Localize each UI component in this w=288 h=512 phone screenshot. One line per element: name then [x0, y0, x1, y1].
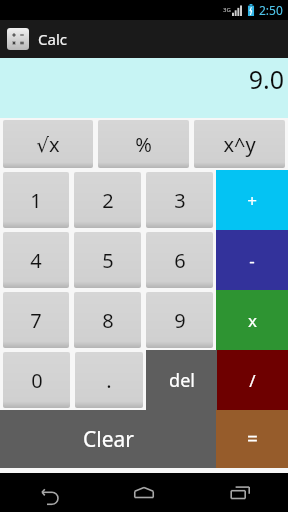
button[interactable]: Equals	[216, 410, 288, 468]
button[interactable]: Clear	[0, 410, 216, 468]
staticText: Clear	[83, 425, 134, 454]
button[interactable]: 0	[3, 352, 70, 408]
staticText: del	[169, 368, 195, 393]
button[interactable]: %	[98, 120, 189, 168]
staticText: x	[248, 309, 257, 332]
button[interactable]: 9	[146, 292, 213, 348]
button[interactable]: 7	[3, 292, 69, 348]
button[interactable]: Minus	[216, 230, 288, 290]
button[interactable]: 2	[74, 172, 141, 228]
button[interactable]: Divide	[217, 350, 288, 410]
staticText: +	[247, 189, 257, 212]
staticText: =	[247, 426, 258, 452]
button[interactable]: .	[75, 352, 143, 408]
button[interactable]: √x	[3, 120, 93, 168]
staticText: 9	[174, 307, 186, 334]
staticText: 9.0	[248, 62, 284, 96]
staticText: 7	[30, 307, 42, 334]
staticText: /	[249, 369, 256, 392]
staticText: %	[135, 131, 152, 158]
button[interactable]: Multiply	[216, 290, 288, 350]
button[interactable]: x^y	[194, 120, 285, 168]
button[interactable]: Recent apps	[192, 473, 288, 512]
button[interactable]: Back	[0, 473, 96, 512]
staticText: Calc	[38, 29, 67, 49]
button[interactable]: Plus	[216, 170, 288, 230]
staticText: 3G	[223, 6, 231, 14]
staticText: 6	[174, 247, 186, 274]
staticText: √x	[36, 131, 60, 158]
button[interactable]: 1	[3, 172, 69, 228]
staticText: .	[106, 367, 112, 394]
staticText: x^y	[223, 131, 256, 158]
staticText: 8	[102, 307, 114, 334]
staticText: 5	[102, 247, 114, 274]
button[interactable]: 5	[74, 232, 141, 288]
staticText: 1	[30, 187, 42, 214]
button[interactable]: 4	[3, 232, 69, 288]
staticText: 0	[31, 367, 43, 394]
button[interactable]: 8	[74, 292, 141, 348]
button[interactable]: 3	[146, 172, 213, 228]
staticText: 2	[102, 187, 114, 214]
staticText: 2:50	[259, 2, 283, 18]
button[interactable]: Home	[96, 473, 192, 512]
staticText: 4	[30, 247, 42, 274]
staticText: 3	[174, 187, 186, 214]
button[interactable]: del	[146, 350, 217, 410]
button[interactable]: 6	[146, 232, 213, 288]
staticText: -	[249, 249, 255, 272]
